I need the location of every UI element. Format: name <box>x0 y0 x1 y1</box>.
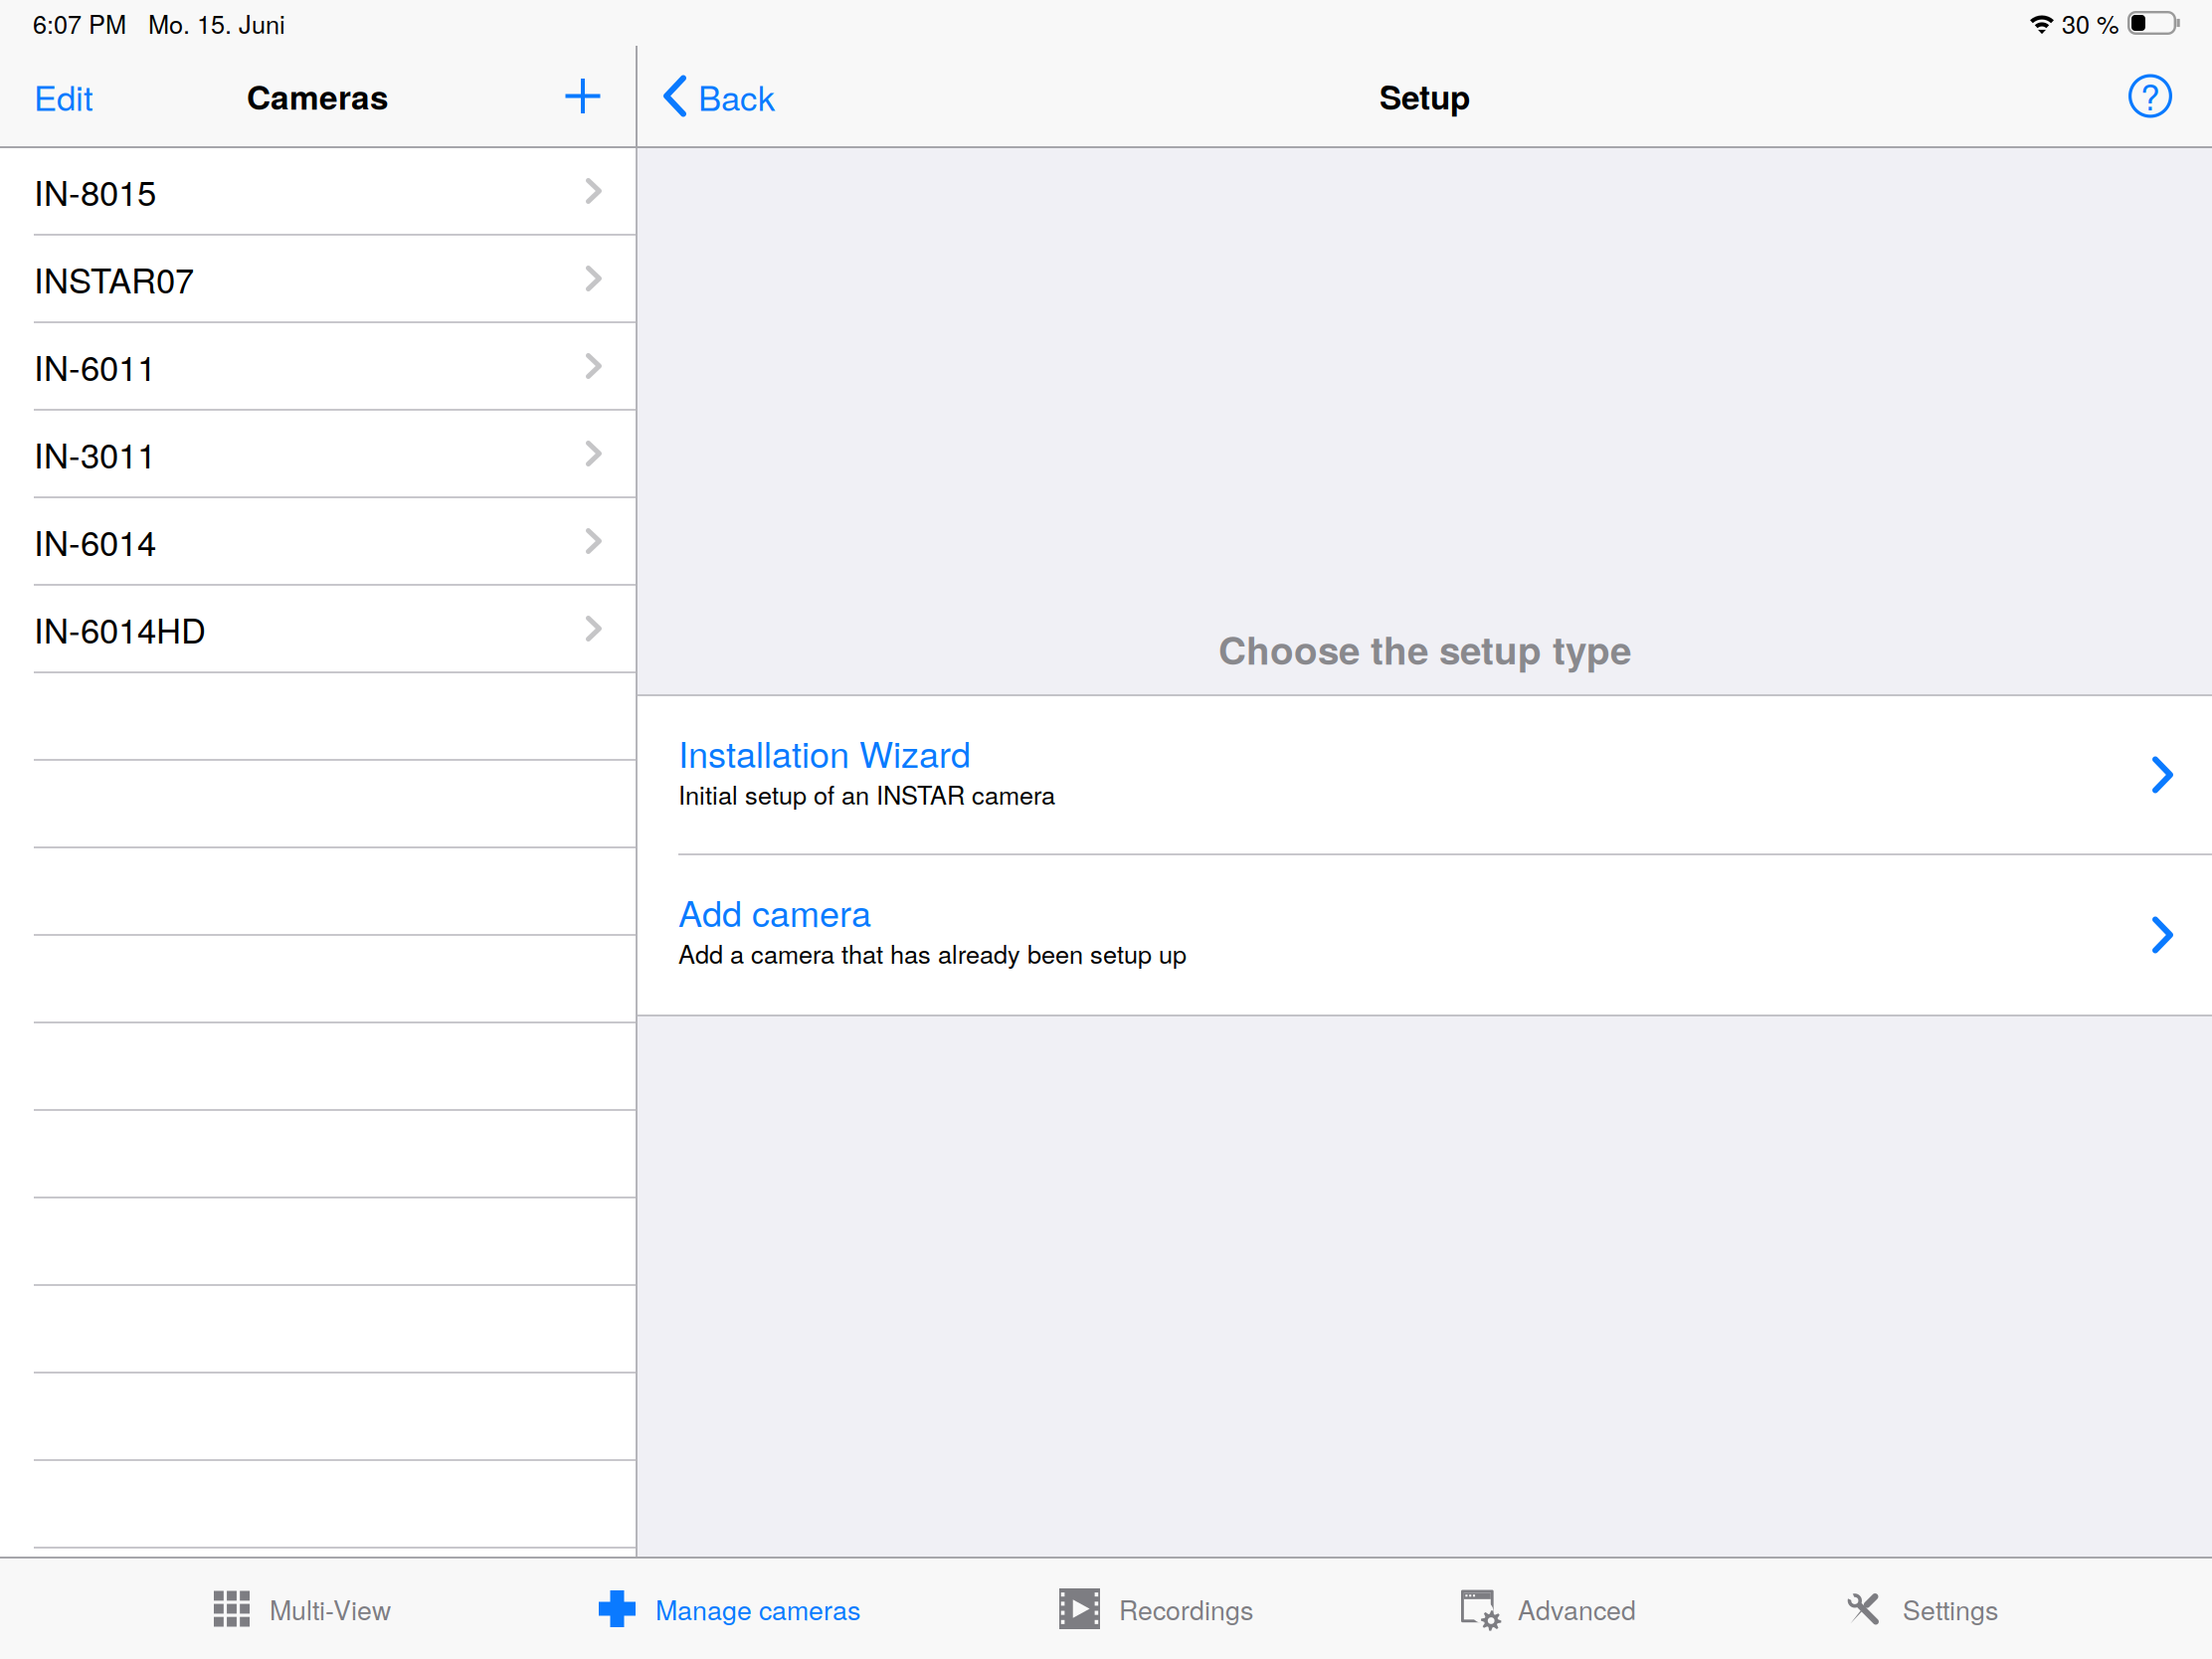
staticText: Manage cameras <box>655 1590 860 1628</box>
button[interactable]: IN-3011 <box>0 411 636 498</box>
button[interactable]: IN-6014 <box>0 498 636 586</box>
staticText: Cameras <box>247 72 389 120</box>
staticText: Setup <box>1380 72 1470 120</box>
staticText: IN-3011 <box>34 429 156 478</box>
staticText: Settings <box>1903 1590 1998 1628</box>
staticText: Add a camera that has already been setup… <box>678 935 1187 971</box>
button[interactable]: Add camera <box>555 46 611 146</box>
button[interactable]: Settings <box>1846 1559 2005 1659</box>
staticText: Advanced <box>1518 1590 1636 1628</box>
staticText: Recordings <box>1119 1590 1253 1628</box>
staticText: INSTAR07 <box>34 254 194 303</box>
button[interactable]: Multi-View <box>214 1559 396 1659</box>
staticText: Mo. 15. Juni <box>148 5 285 41</box>
button[interactable]: IN-6011 <box>0 323 636 411</box>
staticText: IN-6014 <box>34 516 156 566</box>
button[interactable]: Back <box>663 46 775 146</box>
staticText: ? <box>2140 70 2160 120</box>
button[interactable]: IN-8015 <box>0 148 636 236</box>
button[interactable]: Add camera <box>638 855 2212 1014</box>
staticText: 6:07 PM <box>33 5 126 41</box>
staticText: 30 % <box>2062 5 2120 41</box>
button[interactable]: Installation Wizard <box>638 696 2212 855</box>
staticText: IN-8015 <box>34 166 156 216</box>
button[interactable]: Advanced <box>1461 1559 1642 1659</box>
staticText: Choose the setup type <box>1218 621 1631 676</box>
button[interactable]: Help <box>2120 46 2180 146</box>
staticText: Installation Wizard <box>678 727 971 778</box>
staticText: Add camera <box>678 886 871 937</box>
staticText: Multi-View <box>270 1590 391 1628</box>
button[interactable]: IN-6014HD <box>0 586 636 673</box>
staticText: Initial setup of an INSTAR camera <box>678 776 1055 812</box>
staticText: IN-6014HD <box>34 604 206 653</box>
button[interactable]: Recordings <box>1059 1559 1258 1659</box>
staticText: Edit <box>34 71 93 121</box>
button[interactable]: Manage cameras <box>599 1559 863 1659</box>
staticText: IN-6011 <box>34 341 156 391</box>
staticText: Back <box>698 71 775 121</box>
button[interactable]: Edit <box>34 46 93 146</box>
button[interactable]: INSTAR07 <box>0 236 636 323</box>
